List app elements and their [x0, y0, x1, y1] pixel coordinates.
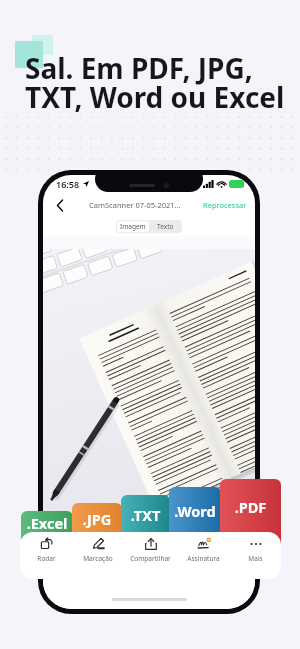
staticText: .Word	[169, 501, 221, 521]
button[interactable]: Rodar	[20, 535, 72, 576]
button[interactable]: Compartilhar	[124, 535, 176, 576]
staticText: CamScanner 07-05-2021...	[89, 200, 181, 210]
button[interactable]: .JPG	[72, 503, 122, 545]
staticText: TXT, Word ou Excel	[25, 78, 285, 116]
staticText: Compartilhar	[130, 554, 171, 563]
button[interactable]: Texto	[149, 221, 181, 232]
staticText: .PDF	[220, 497, 281, 517]
staticText: .JPG	[72, 509, 122, 529]
button[interactable]: .PDF	[220, 479, 281, 545]
button[interactable]: Reprocessar	[203, 200, 247, 210]
button[interactable]: .TXT	[121, 495, 170, 545]
staticText: Texto	[157, 222, 174, 231]
staticText: Sal. Em PDF, JPG,	[25, 49, 253, 87]
staticText: Imagem	[120, 222, 146, 231]
staticText: Rodar	[37, 554, 56, 563]
staticText: Mais	[248, 554, 263, 563]
button[interactable]: Back	[52, 197, 68, 213]
staticText: Marcação	[83, 554, 113, 563]
staticText: .Excel	[21, 513, 73, 533]
staticText: Assinatura	[187, 554, 220, 563]
button[interactable]: .Word	[169, 487, 221, 545]
button[interactable]: Assinatura	[177, 535, 229, 576]
button[interactable]: Marcação	[72, 535, 124, 576]
button[interactable]: Mais	[229, 535, 281, 576]
staticText: .TXT	[121, 505, 170, 525]
button[interactable]: Imagem	[117, 221, 149, 232]
button[interactable]: .Excel	[21, 511, 73, 545]
staticText: 16:58	[56, 178, 80, 190]
